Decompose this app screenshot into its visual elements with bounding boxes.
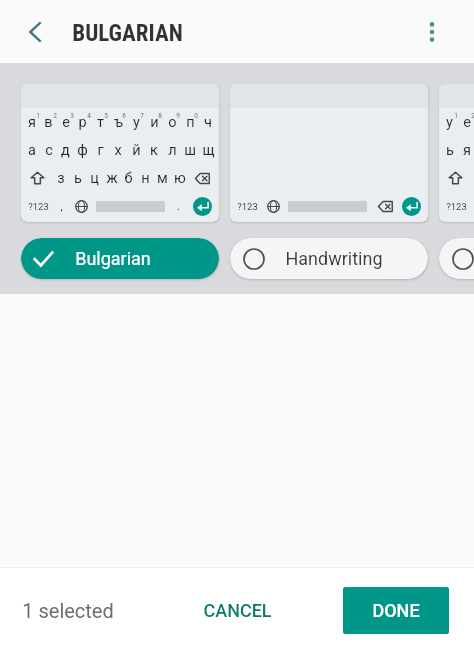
staticText: х <box>114 142 122 159</box>
staticText: 1 <box>454 112 458 120</box>
staticText: б <box>124 170 133 187</box>
staticText: ш <box>184 142 196 159</box>
staticText: ?123 <box>28 201 49 212</box>
staticText: 4 <box>87 112 91 120</box>
staticText: у <box>133 114 140 131</box>
staticText: е <box>463 114 471 131</box>
staticText: а <box>28 142 36 159</box>
staticText: BULGARIAN <box>72 20 183 47</box>
staticText: 8 <box>158 112 162 120</box>
staticText: и <box>150 114 159 131</box>
staticText: Bulgarian <box>75 248 151 269</box>
staticText: м <box>157 170 168 187</box>
staticText: DONE <box>372 600 420 621</box>
button[interactable]: Handwriting <box>230 238 428 279</box>
button[interactable]: Bulgarian BDS <box>439 238 474 279</box>
button[interactable]: CANCEL <box>187 588 288 633</box>
staticText: ф <box>77 142 88 159</box>
staticText: й <box>132 142 141 159</box>
button[interactable]: Bulgarian <box>21 238 219 279</box>
staticText: п <box>186 114 195 131</box>
staticText: ж <box>106 170 118 187</box>
staticText: с <box>45 142 53 159</box>
staticText: ч <box>204 114 212 131</box>
staticText: 1 selected <box>22 599 114 622</box>
staticText: 0 <box>194 112 198 120</box>
staticText: 2 <box>53 112 57 120</box>
staticText: в <box>44 114 53 131</box>
staticText: л <box>168 142 177 159</box>
staticText: ц <box>90 170 99 187</box>
button[interactable]: More options <box>408 8 456 56</box>
staticText: ь <box>74 170 82 187</box>
staticText: о <box>168 114 177 131</box>
staticText: ?123 <box>446 201 467 212</box>
staticText: д <box>61 142 70 159</box>
staticText: з <box>57 170 65 187</box>
staticText: я <box>28 114 36 131</box>
button[interactable]: DONE <box>343 587 449 634</box>
staticText: 2 <box>471 112 474 120</box>
staticText: е <box>62 114 70 131</box>
staticText: ?123 <box>237 201 258 212</box>
staticText: 6 <box>122 112 126 120</box>
staticText: ъ <box>114 114 123 131</box>
staticText: у <box>446 114 453 131</box>
staticText: н <box>141 170 150 187</box>
staticText: т <box>97 114 104 131</box>
staticText: 5 <box>104 112 108 120</box>
staticText: 1 <box>36 112 40 120</box>
staticText: . <box>177 200 180 213</box>
staticText: щ <box>202 142 215 159</box>
staticText: CANCEL <box>203 600 272 621</box>
staticText: ю <box>174 170 186 187</box>
staticText: р <box>78 114 87 131</box>
staticText: , <box>60 200 63 213</box>
button[interactable]: Back <box>11 8 59 56</box>
staticText: г <box>97 142 104 159</box>
staticText: 9 <box>176 112 180 120</box>
staticText: 3 <box>70 112 74 120</box>
staticText: к <box>150 142 158 159</box>
staticText: Handwriting <box>285 248 383 269</box>
staticText: 7 <box>140 112 144 120</box>
staticText: ь <box>446 142 454 159</box>
staticText: я <box>463 142 471 159</box>
